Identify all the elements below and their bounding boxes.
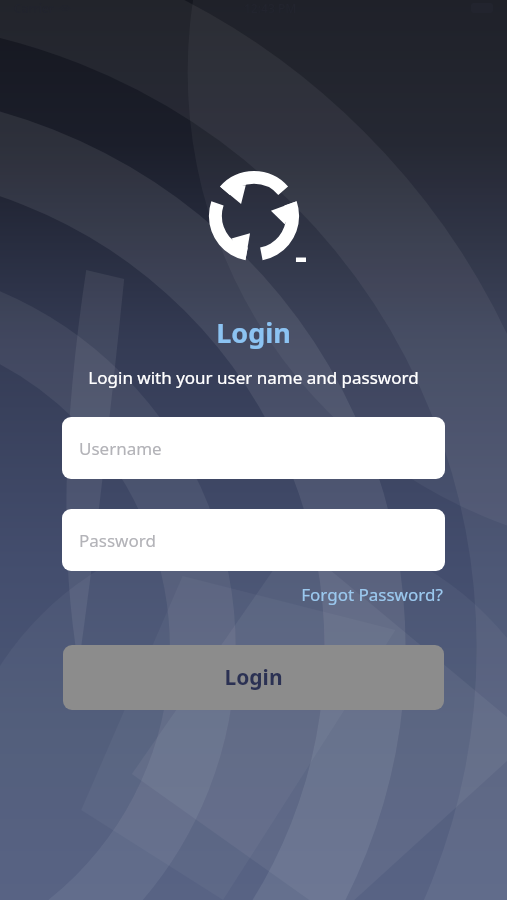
button[interactable]: Username xyxy=(62,417,445,479)
button[interactable]: Password xyxy=(62,509,445,571)
staticText: Login xyxy=(224,663,283,692)
staticText: Login xyxy=(216,314,291,351)
staticText: Username xyxy=(79,437,162,460)
button[interactable]: Login xyxy=(63,645,444,710)
button[interactable]: Forgot Password? xyxy=(299,580,445,609)
staticText: Password xyxy=(79,529,156,552)
staticText: Forgot Password? xyxy=(301,583,443,606)
staticText: Login with your user name and password xyxy=(88,366,419,389)
